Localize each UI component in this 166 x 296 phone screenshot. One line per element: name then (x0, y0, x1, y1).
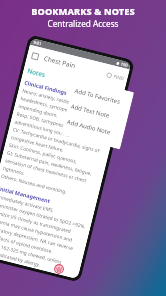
staticText: Neuro: anxiety, restlessness, light- (22, 87, 98, 113)
button[interactable]: Menu (29, 50, 40, 61)
staticText: GI: Substernal pain, weakness, fatigue, (6, 149, 93, 177)
staticText: Initial Management (0, 184, 51, 204)
staticText: headedness, syncope, weakness, (20, 95, 94, 120)
staticText: FIND (113, 73, 125, 81)
staticText: Skin: Coolness, pallor, cyanosis, diapho… (8, 142, 104, 172)
staticText: 9:01 (33, 39, 42, 46)
staticText: Administer oxygen titrated to SpO2 >92%. (0, 201, 87, 231)
staticText: Others: Nausea and vomiting. (0, 173, 68, 196)
staticText: Chest Pain (43, 54, 77, 70)
staticText: BOOKMARKS & NOTES (31, 5, 135, 18)
button[interactable]: Add Audio Note (65, 114, 125, 144)
staticText: adventitious lung sounds. (14, 118, 73, 139)
staticText: tightness. (2, 165, 26, 177)
staticText: Add Audio Note (66, 118, 112, 137)
staticText: Centralized Access (47, 18, 119, 29)
button[interactable]: Add Text Note (69, 99, 129, 128)
staticText: Notes (26, 66, 47, 79)
staticText: Add Text Note (70, 102, 111, 120)
staticText: Add To Favorites (74, 87, 121, 106)
staticText: the effects of opioid overdose. (0, 232, 54, 255)
button[interactable]: Favorite (104, 70, 114, 79)
staticText: Clinical Findings (24, 79, 68, 96)
staticText: Immediately activate EMS. (0, 193, 55, 214)
staticText: Monitor V5 closely as transmigrated (0, 209, 73, 235)
staticText: ischemia may cause hypotension and (0, 216, 74, 244)
staticText: contraindicated by allergy. (0, 247, 42, 269)
staticText: 100 (120, 61, 128, 68)
staticText: impending doom. (18, 103, 59, 120)
other: App badge (54, 264, 64, 274)
button[interactable]: Add To Favorites (73, 83, 133, 113)
staticText: congestive heart failure. (10, 134, 65, 154)
staticText: Aspirin 162-325 mg chewed, unless (0, 240, 63, 266)
staticText: CV: Tachycardia or bradycardia, signs of (12, 126, 101, 155)
staticText: sensation of chest heaviness or chest (4, 157, 87, 184)
staticText: respiratory depression. NA can reverse (0, 224, 75, 252)
staticText: Resp: SOB, tachypnea, dyspnea, (16, 111, 87, 135)
